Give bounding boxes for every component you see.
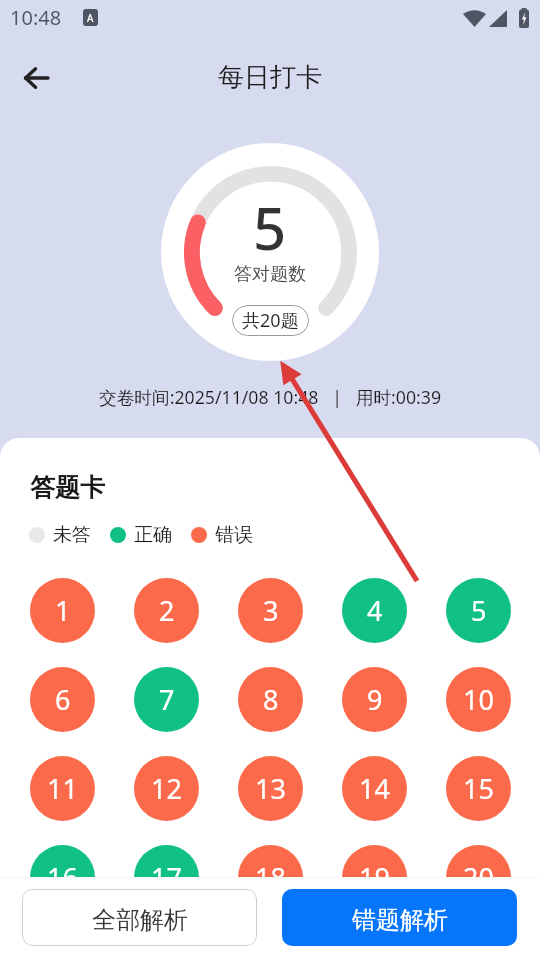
staticText: 11 (47, 770, 78, 807)
staticText: 9 (367, 681, 383, 718)
staticText: 10 (463, 681, 494, 718)
button[interactable]: 14 (342, 756, 407, 821)
button[interactable]: Back (12, 54, 60, 102)
button[interactable]: 1 (30, 578, 95, 643)
staticText: 3 (263, 592, 279, 629)
staticText: 每日打卡 (218, 61, 322, 94)
button[interactable]: 2 (134, 578, 199, 643)
button[interactable]: 全部解析 (22, 889, 257, 946)
button[interactable]: 17 (134, 845, 199, 910)
button[interactable]: 16 (30, 845, 95, 910)
staticText: 答对题数 (234, 263, 306, 286)
staticText: 正确 (134, 523, 172, 547)
staticText: 未答 (53, 523, 91, 547)
staticText: 16 (47, 859, 78, 896)
staticText: 错题解析 (352, 905, 448, 935)
staticText: 答题卡 (30, 472, 105, 503)
button[interactable]: 4 (342, 578, 407, 643)
staticText: 5 (253, 188, 287, 267)
button[interactable]: 19 (342, 845, 407, 910)
staticText: 10:48 (10, 4, 62, 31)
button[interactable]: 9 (342, 667, 407, 732)
button[interactable]: 13 (238, 756, 303, 821)
staticText: 20 (463, 859, 494, 896)
staticText: 1 (55, 592, 71, 629)
button[interactable]: 5 (446, 578, 511, 643)
staticText: 错误 (215, 523, 253, 547)
button[interactable]: 3 (238, 578, 303, 643)
staticText: 2 (159, 592, 175, 629)
staticText: 5 (471, 592, 487, 629)
button[interactable]: 15 (446, 756, 511, 821)
staticText: 全部解析 (92, 905, 188, 935)
staticText: 4 (367, 592, 383, 629)
staticText: 14 (359, 770, 390, 807)
staticText: 17 (151, 859, 182, 896)
staticText: A (87, 11, 94, 25)
staticText: 19 (359, 859, 390, 896)
staticText: 12 (151, 770, 182, 807)
button[interactable]: 10 (446, 667, 511, 732)
button[interactable]: 7 (134, 667, 199, 732)
staticText: 15 (463, 770, 494, 807)
staticText: 交卷时间:2025/11/08 10:48 | 用时:00:39 (0, 385, 540, 409)
staticText: 18 (255, 859, 286, 896)
button[interactable]: 6 (30, 667, 95, 732)
staticText: 13 (255, 770, 286, 807)
button[interactable]: 错题解析 (282, 889, 517, 946)
button[interactable]: 18 (238, 845, 303, 910)
staticText: 7 (159, 681, 175, 718)
button[interactable]: 共20题 (232, 305, 309, 336)
button[interactable]: 20 (446, 845, 511, 910)
button[interactable]: 12 (134, 756, 199, 821)
button[interactable]: 8 (238, 667, 303, 732)
staticText: 共20题 (242, 308, 299, 333)
staticText: 8 (263, 681, 279, 718)
button[interactable]: 11 (30, 756, 95, 821)
staticText: 6 (55, 681, 71, 718)
